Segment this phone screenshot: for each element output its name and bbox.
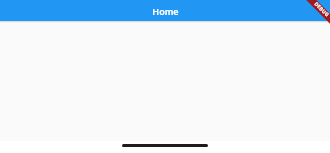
- other: Debug banner: [294, 0, 330, 36]
- staticText: DEBUG: [312, 0, 330, 19]
- button[interactable]: Home: [0, 0, 330, 21]
- staticText: Home: [152, 5, 179, 17]
